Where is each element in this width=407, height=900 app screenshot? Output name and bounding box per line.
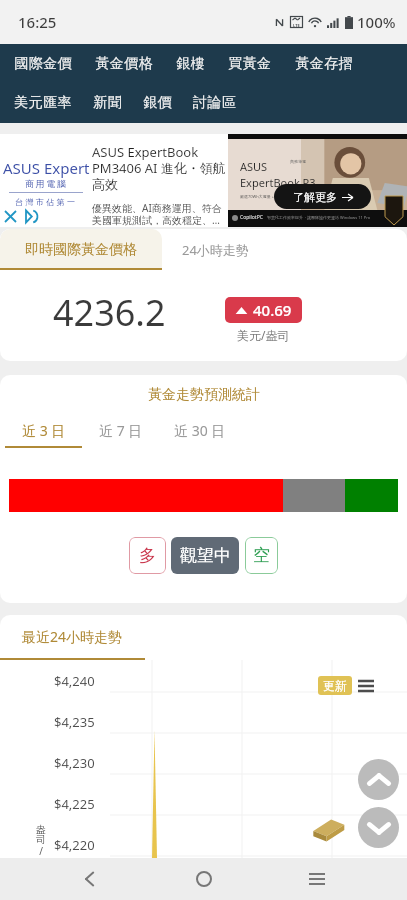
button[interactable]: Scroll to top <box>358 759 399 800</box>
button[interactable]: Recent apps <box>293 858 341 900</box>
button[interactable]: 空 <box>245 537 278 574</box>
button[interactable]: 國際金價 <box>9 49 77 79</box>
button[interactable]: 黃金價格 <box>90 49 158 79</box>
button[interactable]: Back <box>66 858 114 900</box>
staticText: 近 30 日 <box>174 421 226 440</box>
button[interactable]: Home <box>180 858 228 900</box>
staticText: 黃金走勢預測統計 <box>148 386 260 404</box>
button[interactable]: 即時國際黃金價格 <box>0 229 162 270</box>
staticText: $4,220 <box>54 836 95 854</box>
staticText: $4,235 <box>54 713 95 731</box>
button[interactable]: 觀望中 <box>171 537 239 574</box>
staticText: 空 <box>253 545 270 566</box>
staticText: 買黃金 <box>228 55 272 73</box>
button[interactable]: 近 30 日 <box>159 415 241 448</box>
button[interactable]: 美元匯率 <box>9 88 77 118</box>
staticText: ASUS Expert <box>3 158 90 178</box>
staticText: 24小時走勢 <box>182 241 249 259</box>
button[interactable]: Close ad <box>3 209 18 224</box>
staticText: $4,230 <box>54 754 95 772</box>
button[interactable]: Menu <box>358 679 374 693</box>
staticText: 更新 <box>323 678 347 693</box>
staticText: 黃金價格 <box>95 55 153 73</box>
button[interactable]: ASUS <box>228 134 407 227</box>
staticText: 4236.2 <box>53 288 166 337</box>
staticText: 美元匯率 <box>14 94 72 112</box>
button[interactable]: Scroll to bottom <box>358 807 399 848</box>
staticText: 近 3 日 <box>22 421 66 440</box>
staticText: 40.69 <box>253 300 292 320</box>
button[interactable]: 討論區 <box>188 88 242 118</box>
staticText: 100% <box>357 12 396 32</box>
staticText: $4,240 <box>54 672 95 690</box>
button[interactable]: 了解更多 <box>274 184 371 209</box>
staticText: 銀樓 <box>176 55 205 73</box>
button[interactable]: 銀價 <box>138 88 177 118</box>
staticText: 國際金價 <box>14 55 72 73</box>
staticText: ASUS <box>240 159 268 174</box>
staticText: LTE <box>293 23 300 28</box>
staticText: 多 <box>139 545 156 566</box>
button[interactable]: 近 7 日 <box>82 415 159 448</box>
button[interactable]: 24小時走勢 <box>162 229 268 270</box>
staticText: 16:25 <box>18 12 57 32</box>
staticText: 盎 司 / <box>36 823 46 858</box>
staticText: 了解更多 <box>293 190 337 204</box>
button[interactable]: 黃金存摺 <box>290 49 358 79</box>
staticText: 最近24小時走勢 <box>22 627 123 646</box>
staticText: 觀望中 <box>180 545 231 566</box>
button[interactable]: 多 <box>129 537 166 574</box>
button[interactable]: Ad choices <box>24 209 39 224</box>
staticText: 優異效能、AI商務運用、符合 美國軍規測試，高效穩定、… <box>92 201 222 227</box>
staticText: 討論區 <box>193 94 237 112</box>
button[interactable]: 最近24小時走勢 <box>0 615 145 660</box>
staticText: 商用電腦 <box>25 178 68 189</box>
staticText: ASUS ExpertBook PM3406 AI 進化・領航 高效 <box>92 143 226 193</box>
staticText: 近 7 日 <box>99 421 143 440</box>
staticText: 嚴選70Wh大電量 + AI 商務應用 效率升級 <box>240 194 314 199</box>
button[interactable]: 更新 <box>323 678 347 693</box>
staticText: 智慧化工作效率提升・讓團隊協作更靈活 Windows 11 Pro <box>267 215 371 220</box>
button[interactable]: 新聞 <box>88 88 127 118</box>
staticText: 商務筆電 <box>290 159 306 164</box>
staticText: CopilotPC <box>240 214 263 221</box>
button[interactable]: 買黃金 <box>223 49 277 79</box>
staticText: 黃金存摺 <box>295 55 353 73</box>
staticText: 銀價 <box>143 94 172 112</box>
staticText: 美元/盎司 <box>237 327 290 343</box>
button[interactable]: 近 3 日 <box>5 415 82 448</box>
staticText: 台灣市佔第一 <box>15 197 78 207</box>
button[interactable]: 銀樓 <box>171 49 210 79</box>
staticText: 即時國際黃金價格 <box>25 241 137 259</box>
staticText: 新聞 <box>93 94 122 112</box>
staticText: $4,225 <box>54 795 95 813</box>
staticText: ExpertBook P3 <box>240 175 316 190</box>
